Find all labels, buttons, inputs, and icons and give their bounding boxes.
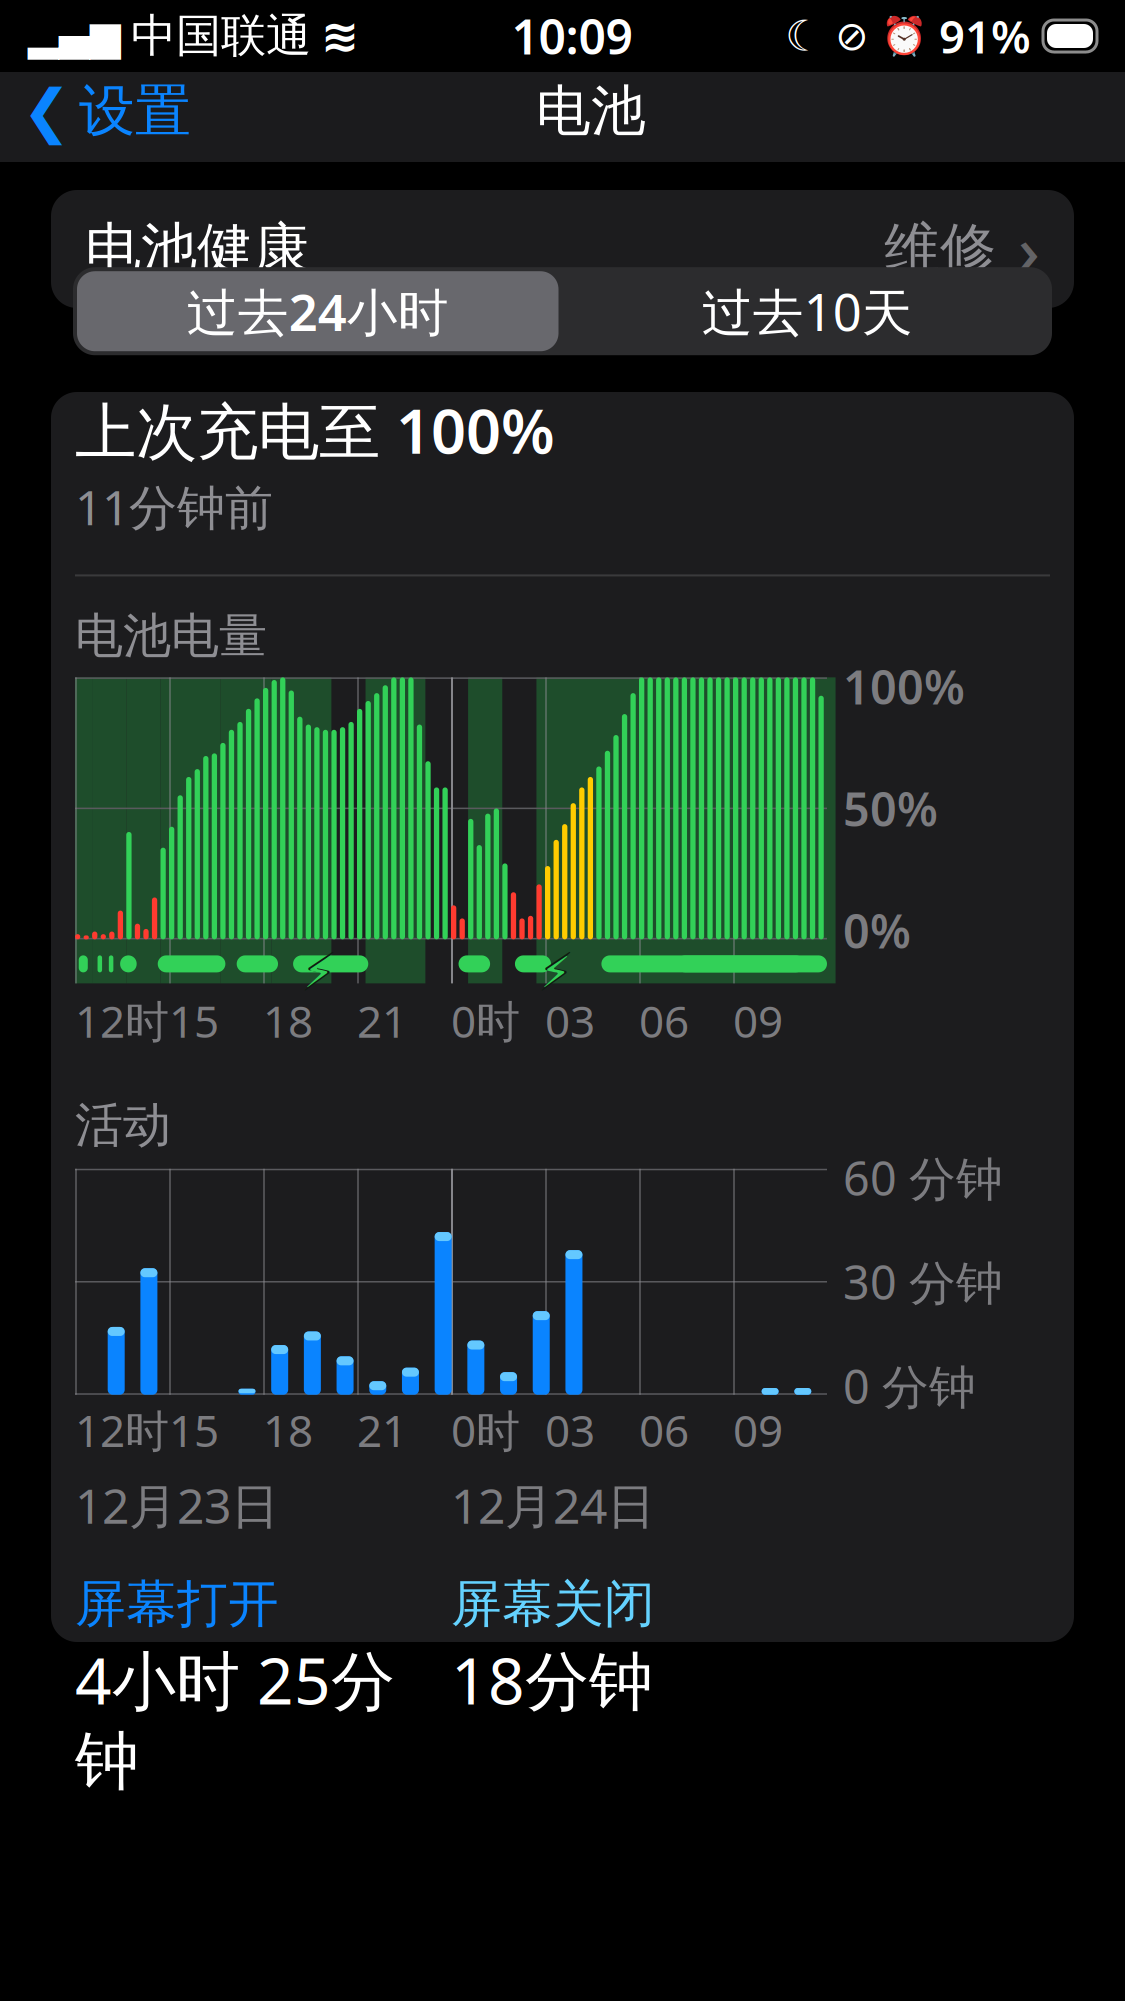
staticText: 过去24小时 (187, 278, 449, 345)
staticText: 维修 (884, 215, 996, 283)
staticText: 100% (843, 655, 965, 717)
staticText: 15 (169, 991, 219, 1050)
staticText: 91% (939, 6, 1031, 66)
staticText: 设置 (79, 77, 191, 145)
staticText: 15 (169, 1401, 219, 1459)
staticText: 活动 (75, 1096, 171, 1155)
staticText: 12时 (75, 1401, 169, 1459)
staticText: 0时 (451, 991, 520, 1050)
staticText: 09 (733, 991, 783, 1050)
staticText: 11分钟前 (75, 475, 273, 538)
staticText: 18分钟 (451, 1637, 653, 1722)
staticText: 12时 (75, 991, 169, 1050)
staticText: ⊘ (835, 13, 869, 59)
staticText: ⚡︎ (300, 942, 337, 1003)
staticText: 屏幕打开 (75, 1573, 279, 1635)
staticText: 10:09 (511, 4, 632, 68)
staticText: 电池 (536, 77, 646, 144)
staticText: 50% (843, 777, 938, 839)
staticText: 上次充电至 100% (75, 389, 555, 471)
staticText: 03 (545, 991, 595, 1050)
button[interactable]: 过去24小时 (73, 267, 562, 355)
staticText: › (1018, 205, 1040, 293)
staticText: 30 分钟 (843, 1251, 1003, 1313)
staticText: 0% (843, 899, 911, 961)
staticText: ❮ (22, 78, 71, 144)
staticText: ≋ (321, 10, 359, 62)
staticText: ⚡︎ (537, 942, 574, 1003)
staticText: 21 (357, 1401, 407, 1459)
staticText: 06 (639, 1401, 689, 1459)
staticText: ⚡︎ (304, 948, 334, 997)
staticText: 06 (639, 991, 689, 1050)
button[interactable]: ❮ (0, 67, 191, 155)
staticText: 电池电量 (75, 606, 267, 665)
staticText: 18 (263, 991, 313, 1050)
staticText: 21 (357, 991, 407, 1050)
staticText: ⏰ (881, 15, 927, 57)
staticText: 电池健康 (85, 215, 309, 283)
staticText: 18 (263, 1401, 313, 1459)
staticText: 12月23日 (75, 1473, 279, 1537)
staticText: ⚡︎ (541, 948, 571, 997)
staticText: 中国联通 (131, 8, 311, 64)
staticText: 0 分钟 (843, 1355, 976, 1417)
staticText: 03 (545, 1401, 595, 1459)
staticText: 4小时 25分钟 (75, 1637, 395, 1801)
staticText: 过去10天 (702, 278, 913, 345)
staticText: 0时 (451, 1401, 520, 1459)
button[interactable]: 电池健康 (51, 190, 1074, 308)
staticText: 12月24日 (451, 1473, 655, 1537)
staticText: ☾ (785, 12, 823, 60)
staticText: 09 (733, 1401, 783, 1459)
staticText: ▂▄▆ (28, 13, 121, 59)
staticText: 60 分钟 (843, 1147, 1003, 1209)
button[interactable]: 过去10天 (562, 267, 1052, 355)
staticText: 屏幕关闭 (451, 1573, 655, 1635)
